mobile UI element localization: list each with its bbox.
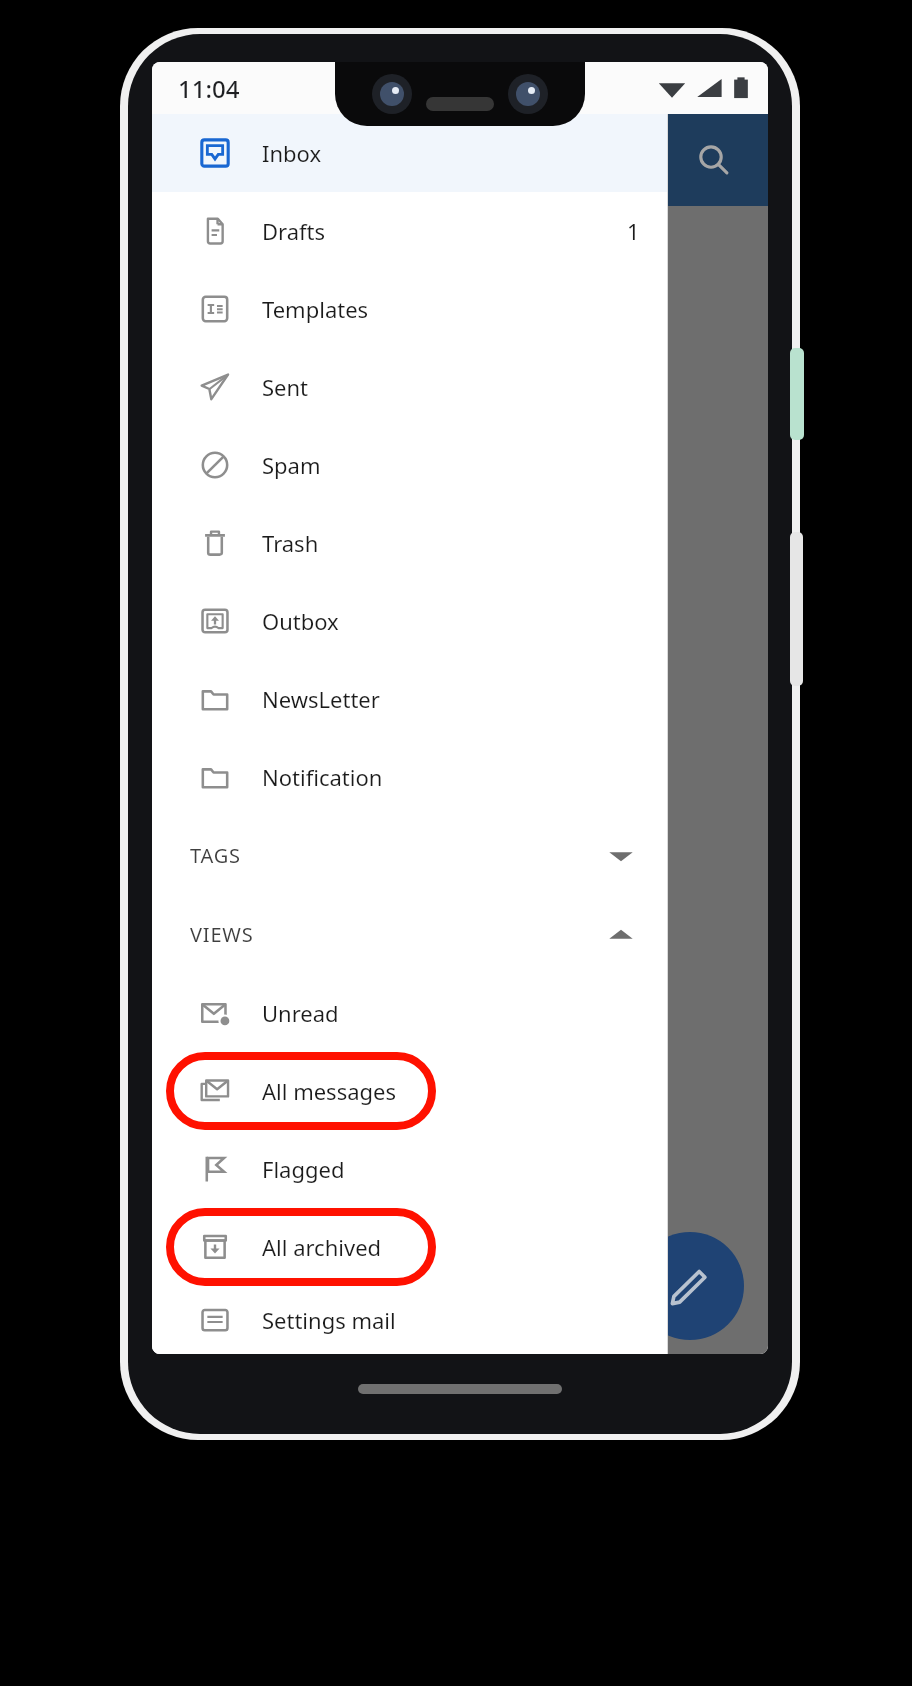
staticText: Sent [262, 372, 309, 402]
staticText: All messages [262, 1076, 397, 1106]
staticText: Flagged [262, 1154, 345, 1184]
staticText: Templates [262, 294, 369, 324]
button[interactable]: Trash [152, 504, 668, 582]
staticText: Outbox [262, 606, 339, 636]
button[interactable]: Search [684, 130, 744, 190]
button[interactable]: Outbox [152, 582, 668, 660]
button[interactable]: Inbox [152, 114, 668, 192]
button[interactable]: Settings mail [152, 1286, 668, 1354]
staticText: 1 [627, 216, 640, 246]
staticText: Settings mail [262, 1305, 396, 1335]
button[interactable]: NewsLetter [152, 660, 668, 738]
button[interactable]: All messages [152, 1052, 668, 1130]
button[interactable]: Collapse VIEWS [598, 912, 644, 958]
staticText: Notification [262, 762, 383, 792]
staticText: Inbox [262, 138, 322, 168]
button[interactable]: Drafts [152, 192, 668, 270]
staticText: 11:04 [178, 72, 240, 105]
button[interactable]: Flagged [152, 1130, 668, 1208]
staticText: All archived [262, 1232, 382, 1262]
button[interactable]: Spam [152, 426, 668, 504]
staticText: VIEWS [190, 921, 254, 948]
button[interactable]: Compose [636, 1232, 744, 1340]
staticText: NewsLetter [262, 684, 380, 714]
staticText: Trash [262, 528, 319, 558]
button[interactable]: Sent [152, 348, 668, 426]
button[interactable]: Templates [152, 270, 668, 348]
staticText: Unread [262, 998, 339, 1028]
staticText: Drafts [262, 216, 326, 246]
button[interactable]: All archived [152, 1208, 668, 1286]
button[interactable]: Notification [152, 738, 668, 816]
button[interactable]: Expand TAGS [598, 833, 644, 879]
button[interactable]: VIEWS [152, 895, 668, 974]
button[interactable]: Unread [152, 974, 668, 1052]
staticText: Spam [262, 450, 321, 480]
staticText: TAGS [190, 842, 241, 869]
button[interactable]: TAGS [152, 816, 668, 895]
